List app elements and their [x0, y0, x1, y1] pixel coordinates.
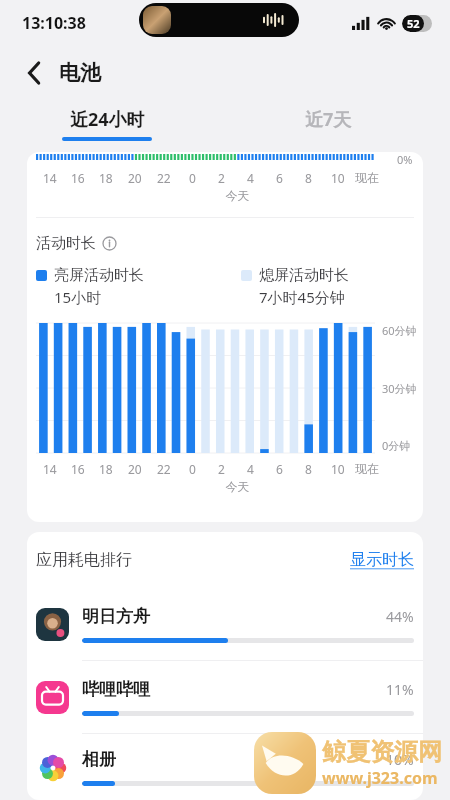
staticText: 熄屏活动时长 [259, 266, 349, 285]
button[interactable]: 近7天 [305, 107, 352, 141]
staticText: 20 [128, 461, 142, 477]
staticText: 44% [386, 607, 414, 626]
staticText: 应用耗电排行 [36, 550, 132, 570]
staticText: 7小时45分钟 [259, 287, 345, 307]
staticText: 0 [189, 461, 196, 477]
staticText: www.j323.com [322, 767, 438, 789]
staticText: 活动时长 [36, 234, 96, 253]
staticText: 0 [189, 170, 196, 186]
staticText: 亮屏活动时长 [54, 266, 144, 285]
staticText: 14 [43, 170, 57, 186]
button[interactable]: 哔哩哔哩 [27, 661, 423, 733]
staticText: 13:10:38 [22, 12, 86, 34]
button[interactable]: 显示时长 [350, 550, 414, 570]
staticText: 52 [407, 16, 420, 31]
staticText: 6 [276, 170, 283, 186]
staticText: 近24小时 [70, 107, 145, 132]
staticText: 相册 [82, 749, 386, 770]
staticText: 8 [305, 170, 312, 186]
staticText: 11% [386, 680, 414, 699]
staticText: 22 [157, 170, 171, 186]
staticText: 明日方舟 [82, 606, 386, 627]
staticText: 2 [218, 170, 225, 186]
staticText: 10% [386, 750, 414, 769]
button[interactable]: 相册 [27, 734, 423, 800]
staticText: 16 [71, 170, 85, 186]
staticText: 20 [128, 170, 142, 186]
staticText: 60分钟 [382, 323, 417, 338]
staticText: 16 [71, 461, 85, 477]
button[interactable]: Info [102, 236, 117, 251]
staticText: 30分钟 [382, 381, 417, 396]
button[interactable]: 近24小时 [62, 107, 152, 141]
staticText: 10 [331, 461, 345, 477]
staticText: 现在 [355, 461, 379, 476]
staticText: 显示时长 [350, 550, 414, 570]
staticText: 14 [43, 461, 57, 477]
staticText: 哔哩哔哩 [82, 679, 386, 700]
staticText: 6 [276, 461, 283, 477]
staticText: 8 [305, 461, 312, 477]
staticText: 15小时 [54, 287, 102, 307]
button[interactable]: 明日方舟 [27, 588, 423, 660]
button[interactable]: Back [14, 53, 54, 93]
staticText: 10 [331, 170, 345, 186]
staticText: 0% [397, 152, 413, 167]
staticText: 今天 [52, 188, 423, 203]
staticText: 4 [247, 170, 254, 186]
staticText: 鲸夏资源网 [322, 737, 442, 767]
staticText: 现在 [355, 170, 379, 185]
staticText: 18 [99, 170, 113, 186]
staticText: 18 [99, 461, 113, 477]
staticText: 4 [247, 461, 254, 477]
staticText: 今天 [52, 479, 423, 494]
staticText: 2 [218, 461, 225, 477]
staticText: 电池 [59, 60, 101, 86]
staticText: 近7天 [305, 107, 352, 132]
staticText: 0分钟 [382, 438, 411, 453]
staticText: 22 [157, 461, 171, 477]
